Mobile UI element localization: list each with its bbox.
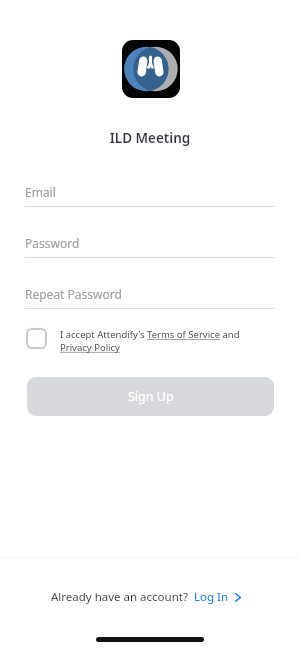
staticText: Log In [194, 589, 229, 605]
button[interactable]: Already have an account? [51, 589, 241, 605]
staticText: Password [25, 235, 80, 251]
staticText: ILD Meeting [0, 129, 300, 147]
button[interactable]: I accept Attendify's Terms of Service an… [60, 328, 240, 354]
button[interactable] [26, 328, 47, 349]
staticText: Already have an account? [51, 589, 188, 605]
staticText: Repeat Password [25, 286, 122, 302]
staticText: Email [25, 184, 56, 200]
button[interactable]: Sign Up [27, 377, 274, 416]
staticText: Sign Up [128, 388, 174, 405]
